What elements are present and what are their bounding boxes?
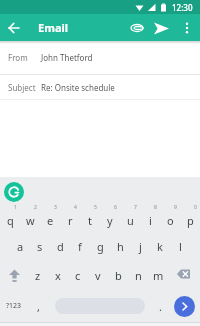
staticText: John Thetford	[41, 52, 93, 63]
button[interactable]: j	[130, 232, 150, 261]
staticText: c	[75, 268, 81, 283]
staticText: i	[149, 213, 152, 228]
staticText: d	[57, 239, 64, 254]
staticText: t	[88, 213, 92, 228]
button[interactable]: a	[10, 232, 30, 261]
staticText: 6	[114, 204, 117, 211]
staticText: v	[95, 268, 101, 283]
staticText: k	[157, 239, 163, 254]
staticText: s	[37, 239, 43, 254]
staticText: Subject	[8, 82, 36, 93]
button[interactable]: 4	[60, 204, 80, 232]
button[interactable]: 2	[20, 204, 40, 232]
staticText: From	[8, 52, 28, 63]
button[interactable]	[177, 18, 197, 38]
button[interactable]: ,	[28, 293, 48, 319]
staticText: e	[47, 213, 54, 228]
staticText: b	[115, 268, 122, 283]
staticText: p	[187, 213, 194, 228]
staticText: .	[159, 299, 162, 314]
staticText: 9	[174, 204, 177, 211]
button[interactable]: x	[48, 261, 68, 289]
button[interactable]: m	[148, 261, 168, 289]
button[interactable]	[4, 182, 24, 202]
staticText: q	[7, 213, 14, 228]
button[interactable]: ?123	[0, 293, 28, 319]
button[interactable]: c	[68, 261, 88, 289]
staticText: 8	[154, 204, 157, 211]
staticText: ,	[37, 299, 40, 314]
staticText: y	[107, 213, 113, 228]
button[interactable]: 8	[140, 204, 160, 232]
staticText: 0	[194, 204, 197, 211]
staticText: x	[55, 268, 61, 283]
button[interactable]: d	[50, 232, 70, 261]
button[interactable]: 7	[120, 204, 140, 232]
staticText: g	[97, 239, 104, 254]
button[interactable]: 1	[0, 204, 20, 232]
staticText: w	[26, 213, 35, 228]
staticText: 7	[134, 204, 137, 211]
button[interactable]: 6	[100, 204, 120, 232]
button[interactable]: k	[150, 232, 170, 261]
button[interactable]: z	[28, 261, 48, 289]
staticText: 2	[34, 204, 37, 211]
staticText: u	[127, 213, 134, 228]
staticText: 5	[94, 204, 97, 211]
button[interactable]: g	[90, 232, 110, 261]
button[interactable]: l	[170, 232, 190, 261]
button[interactable]	[174, 296, 195, 317]
staticText: f	[78, 239, 82, 254]
button[interactable]: s	[30, 232, 50, 261]
staticText: a	[17, 239, 24, 254]
staticText: l	[179, 239, 182, 254]
button[interactable]	[0, 261, 28, 289]
button[interactable]: From	[0, 41, 200, 74]
button[interactable]: h	[110, 232, 130, 261]
staticText: r	[68, 213, 73, 228]
button[interactable]: n	[128, 261, 148, 289]
staticText: n	[135, 268, 142, 283]
staticText: h	[117, 239, 124, 254]
button[interactable]: v	[88, 261, 108, 289]
staticText: j	[139, 239, 142, 254]
button[interactable]: Subject	[0, 75, 200, 99]
staticText: 3	[54, 204, 57, 211]
staticText: 4	[74, 204, 77, 211]
staticText: Email	[38, 20, 69, 35]
button[interactable]: 0	[180, 204, 200, 232]
staticText: 1	[14, 204, 17, 211]
button[interactable]	[125, 16, 149, 40]
staticText: m	[153, 268, 164, 283]
button[interactable]	[0, 14, 27, 41]
staticText: z	[35, 268, 41, 283]
button[interactable]: b	[108, 261, 128, 289]
staticText: ?123	[6, 301, 22, 311]
staticText: 12:30	[172, 2, 193, 13]
button[interactable]: 9	[160, 204, 180, 232]
button[interactable]: 3	[40, 204, 60, 232]
button[interactable]: f	[70, 232, 90, 261]
staticText: o	[167, 213, 174, 228]
button[interactable]	[149, 16, 173, 40]
button[interactable]	[168, 261, 200, 289]
button[interactable]: 5	[80, 204, 100, 232]
staticText: Re: Onsite schedule	[41, 82, 115, 93]
button[interactable]: .	[152, 293, 168, 319]
